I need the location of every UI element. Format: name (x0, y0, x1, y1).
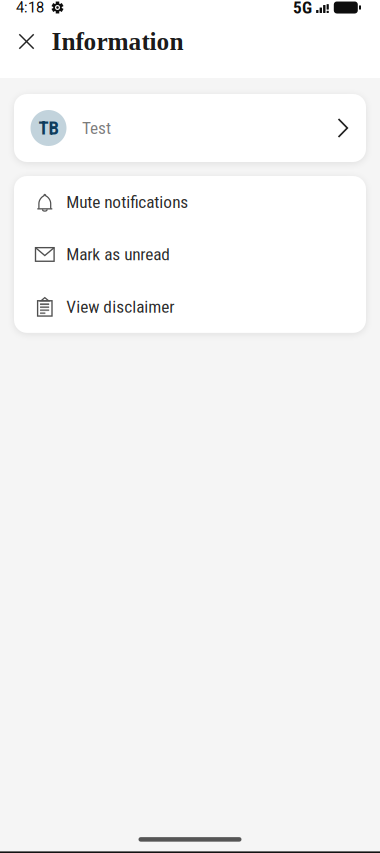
button[interactable]: Close (9, 19, 44, 63)
staticText: 5G (293, 0, 312, 18)
staticText: 4:18 (16, 0, 44, 16)
staticText: Information (51, 27, 183, 56)
button[interactable]: TB (14, 94, 366, 162)
button[interactable]: Mark as unread (14, 228, 366, 281)
staticText: Mark as unread (66, 244, 170, 265)
button[interactable]: Mute notifications (14, 176, 366, 228)
staticText: TB (38, 117, 58, 139)
staticText: View disclaimer (66, 297, 174, 317)
staticText: Test (82, 118, 111, 138)
staticText: Mute notifications (66, 192, 188, 212)
button[interactable]: View disclaimer (14, 281, 366, 333)
